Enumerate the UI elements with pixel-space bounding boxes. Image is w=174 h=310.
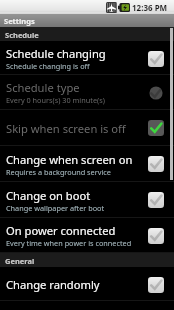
staticText: Skip when screen is off (6, 121, 126, 136)
staticText: Settings (4, 16, 35, 26)
staticText: Change when screen on (6, 152, 133, 167)
button[interactable]: Change randomly (0, 268, 174, 301)
button[interactable]: Schedule type (0, 75, 174, 110)
button[interactable]: Skip when screen is off (0, 110, 174, 146)
staticText: Schedule changing is off (6, 61, 90, 71)
staticText: Schedule changing (6, 46, 106, 61)
staticText: Schedule type (6, 80, 80, 95)
button[interactable]: On power connected (0, 218, 174, 253)
button[interactable]: Schedule changing (0, 42, 174, 75)
staticText: Requires a background service (6, 167, 111, 177)
staticText: On power connected (6, 223, 116, 238)
button[interactable]: Change when screen on (0, 146, 174, 182)
staticText: Change randomly (6, 277, 100, 292)
button[interactable]: Change on boot (0, 182, 174, 218)
staticText: Change on boot (6, 188, 91, 203)
staticText: Schedule (5, 30, 39, 40)
staticText: General (5, 256, 35, 266)
staticText: Change wallpaper after boot (6, 203, 105, 213)
staticText: Every time when power is connected (6, 238, 132, 248)
staticText: Every 0 hours(s) 30 minute(s) (6, 95, 105, 105)
staticText: 12:36 PM (132, 2, 168, 13)
